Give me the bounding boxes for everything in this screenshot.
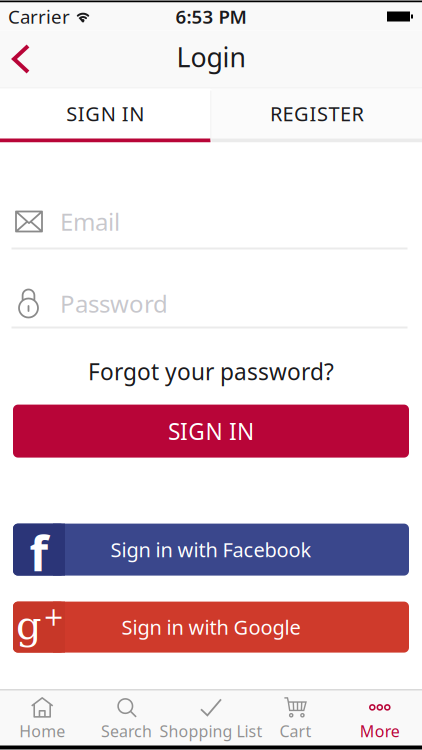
button[interactable]: g — [13, 602, 409, 653]
staticText: Password — [60, 288, 168, 319]
staticText: f — [29, 521, 48, 584]
button[interactable]: Home — [0, 690, 84, 745]
staticText: Forgot your password? — [88, 356, 334, 387]
staticText: SIGN IN — [168, 416, 254, 446]
staticText: More — [360, 720, 400, 742]
staticText: Search — [101, 720, 152, 742]
button[interactable]: Search — [84, 690, 169, 745]
staticText: + — [43, 602, 64, 632]
staticText: Shopping List — [159, 720, 262, 742]
staticText: REGISTER — [270, 100, 363, 127]
staticText: Email — [60, 206, 120, 237]
staticText: Home — [19, 720, 65, 742]
button[interactable]: Forgot your password? — [58, 354, 364, 389]
staticText: g — [16, 602, 42, 648]
button[interactable]: Back — [0, 32, 48, 86]
button[interactable]: Cart — [253, 690, 338, 745]
staticText: Sign in with Facebook — [110, 536, 311, 563]
staticText: 6:53 PM — [175, 4, 246, 29]
staticText: SIGN IN — [66, 100, 144, 127]
staticText: Carrier — [8, 4, 70, 29]
button[interactable]: More — [338, 690, 422, 745]
staticText: Cart — [279, 720, 311, 742]
button[interactable]: f — [13, 524, 409, 576]
staticText: Sign in with Google — [121, 614, 300, 640]
button[interactable]: REGISTER — [211, 88, 422, 142]
button[interactable]: SIGN IN — [0, 88, 210, 142]
button[interactable]: SIGN IN — [13, 405, 409, 458]
staticText: Login — [176, 39, 245, 75]
button[interactable]: Shopping List — [169, 690, 253, 745]
